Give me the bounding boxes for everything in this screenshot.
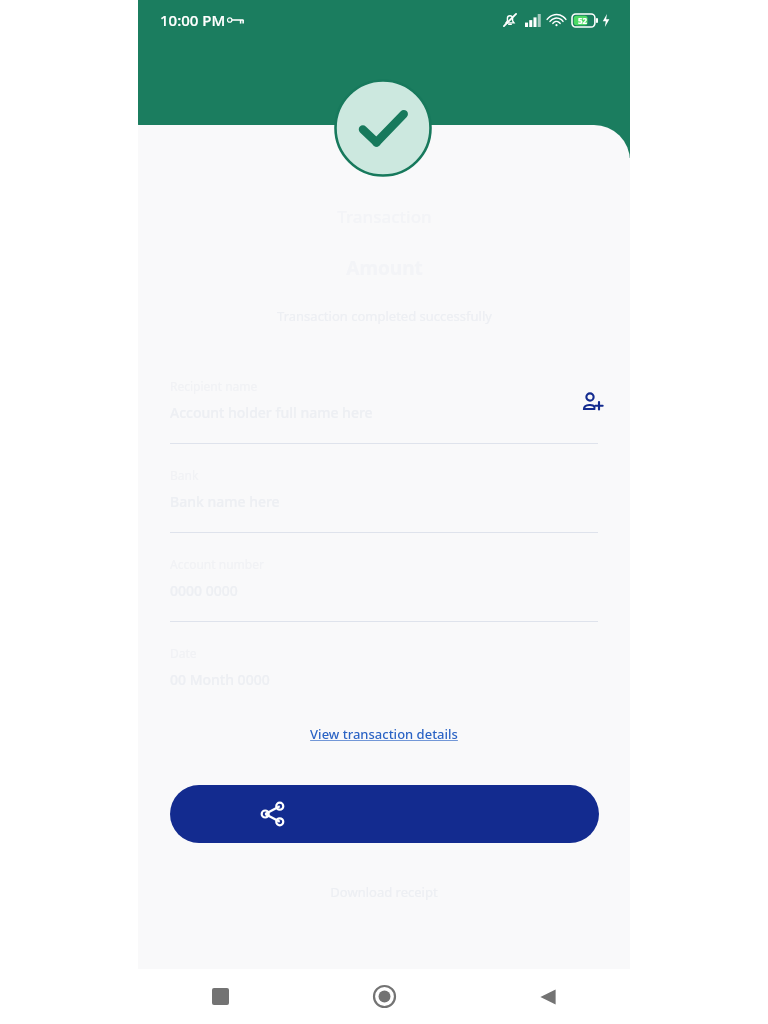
button[interactable]: Back: [466, 969, 630, 1024]
button[interactable]: Home: [302, 969, 466, 1024]
button[interactable]: Add contact: [574, 385, 608, 419]
staticText: Transaction completed successfully: [277, 307, 492, 325]
staticText: Account holder full name here: [170, 403, 373, 422]
staticText: 10:00 PM: [160, 10, 226, 30]
staticText: 00 Month 0000: [170, 670, 270, 689]
staticText: 52: [578, 15, 588, 26]
button[interactable]: Recent apps: [138, 969, 302, 1024]
button[interactable]: View transaction details: [304, 721, 464, 747]
staticText: 0000 0000: [170, 581, 238, 600]
button[interactable]: Share receipt: [170, 785, 599, 843]
button[interactable]: Download receipt: [324, 877, 444, 907]
staticText: Download receipt: [330, 883, 438, 901]
staticText: Bank name here: [170, 492, 280, 511]
staticText: View transaction details: [310, 725, 458, 743]
